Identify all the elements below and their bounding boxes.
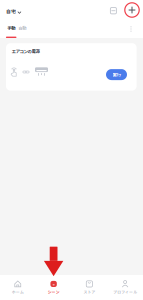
staticText: 自動 (18, 25, 26, 31)
button[interactable]: 自動 (14, 25, 30, 38)
button[interactable]: ストア (71, 275, 107, 300)
button[interactable]: シーン (36, 275, 72, 300)
staticText: 手動 (7, 25, 15, 31)
button[interactable]: ホーム (0, 275, 36, 300)
staticText: プロフィール (113, 289, 137, 294)
staticText: シーン (48, 289, 60, 294)
button[interactable]: 実行 (106, 69, 127, 80)
button[interactable]: 手動 (3, 25, 19, 38)
staticText: 実行 (112, 71, 120, 78)
button[interactable]: プロフィール (107, 275, 143, 300)
button[interactable]: Add (122, 0, 141, 19)
staticText: エアコンの電源 (11, 48, 39, 55)
button[interactable]: More options (124, 22, 138, 35)
button[interactable]: 自宅 (0, 3, 30, 19)
staticText: 自宅 (6, 8, 16, 15)
button[interactable]: Devices (106, 3, 121, 19)
staticText: ホーム (12, 289, 24, 294)
staticText: ストア (83, 289, 95, 294)
